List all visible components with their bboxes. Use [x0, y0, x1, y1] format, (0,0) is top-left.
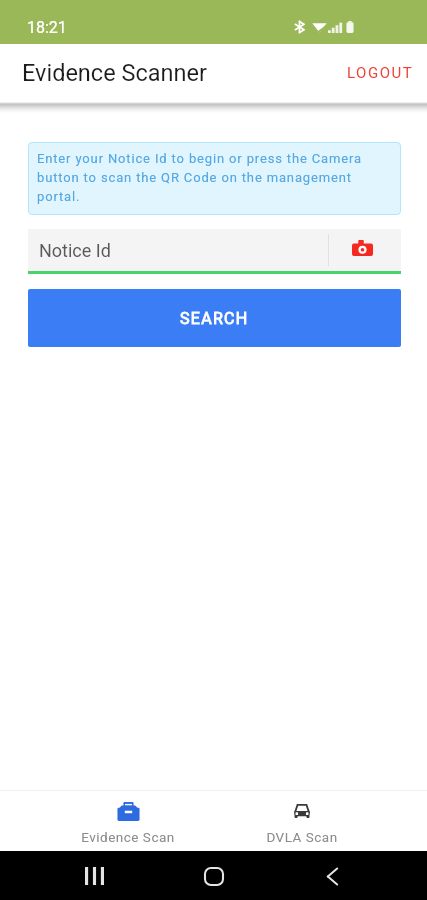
staticText: Enter your Notice Id to begin or press t… [37, 151, 393, 204]
staticText: Notice Id [39, 240, 328, 261]
button[interactable]: DVLA Scan [215, 791, 389, 851]
staticText: Evidence Scanner [22, 59, 207, 87]
button[interactable]: Home [192, 854, 236, 898]
button[interactable]: Back [309, 854, 353, 898]
staticText: SEARCH [180, 309, 249, 328]
button[interactable]: Evidence Scan [41, 791, 215, 851]
button[interactable]: SEARCH [28, 289, 401, 347]
button[interactable]: Scan QR code with camera [329, 229, 401, 271]
staticText: Evidence Scan [81, 829, 175, 845]
staticText: LOGOUT [347, 64, 414, 82]
staticText: 18:21 [27, 18, 67, 37]
button[interactable]: LOGOUT [329, 44, 427, 102]
button[interactable]: Recent apps [74, 854, 118, 898]
staticText: DVLA Scan [266, 829, 338, 845]
